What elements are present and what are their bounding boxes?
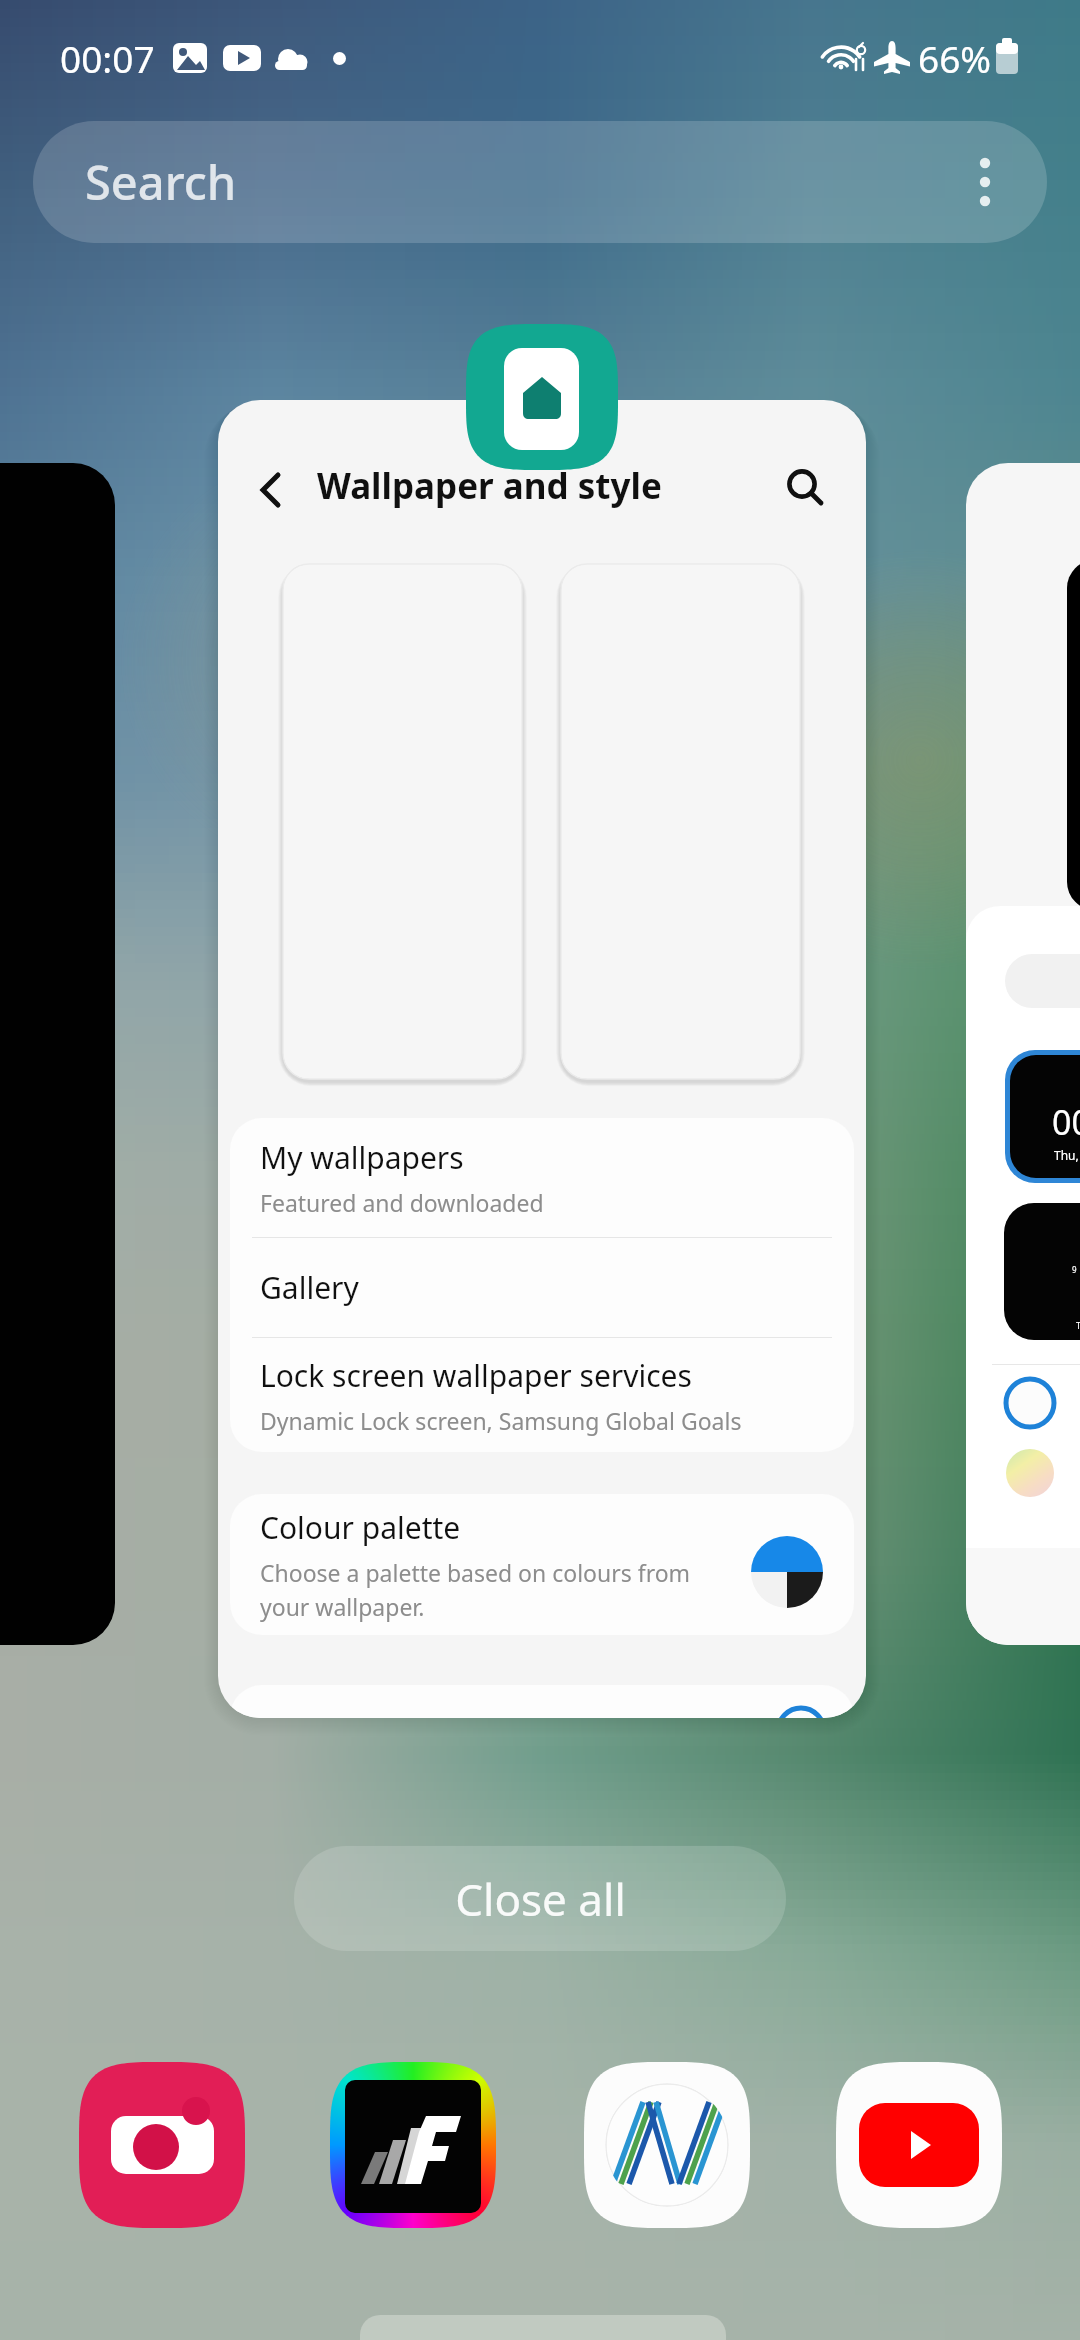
button[interactable]: Wallpapers: [330, 2062, 496, 2228]
staticText: Lock screen wallpaper services: [260, 1355, 692, 1396]
button[interactable]: S: [966, 463, 1080, 1645]
button[interactable]: Close all: [294, 1846, 786, 1951]
staticText: Thu, 13 J: [1076, 1319, 1080, 1331]
staticText: Gallery: [260, 1267, 359, 1308]
button[interactable]: Gallery: [230, 1238, 854, 1337]
staticText: Choose a palette based on colours from y…: [260, 1557, 691, 1622]
button[interactable]: YouTube: [836, 2062, 1002, 2228]
button[interactable]: Search: [776, 459, 840, 523]
button[interactable]: Lock screen wallpaper services: [230, 1338, 854, 1452]
staticText: 00:: [1052, 1099, 1080, 1145]
button[interactable]: Back: [240, 458, 304, 522]
staticText: Close all: [455, 1869, 626, 1929]
button[interactable]: Search: [33, 121, 1047, 243]
staticText: Featured and downloaded: [260, 1187, 544, 1218]
button[interactable]: More options: [945, 142, 1025, 222]
staticText: 9: [1072, 1264, 1077, 1275]
staticText: 00:07: [60, 33, 155, 83]
staticText: Dynamic Lock screen, Samsung Global Goal…: [260, 1405, 742, 1436]
staticText: My wallpapers: [260, 1137, 464, 1178]
button[interactable]: My wallpapers: [230, 1118, 854, 1237]
staticText: 66%: [918, 33, 992, 83]
staticText: Wallpaper and style: [317, 462, 662, 510]
button[interactable]: Nova Launcher: [584, 2062, 750, 2228]
staticText: Colour palette: [260, 1507, 461, 1548]
staticText: Thu, 13 J: [1054, 1147, 1080, 1163]
button[interactable]: Camera: [79, 2062, 245, 2228]
button[interactable]: [0, 463, 115, 1645]
button[interactable]: Back: [218, 400, 866, 1718]
staticText: Search: [85, 150, 237, 214]
button[interactable]: Colour palette: [230, 1494, 854, 1635]
